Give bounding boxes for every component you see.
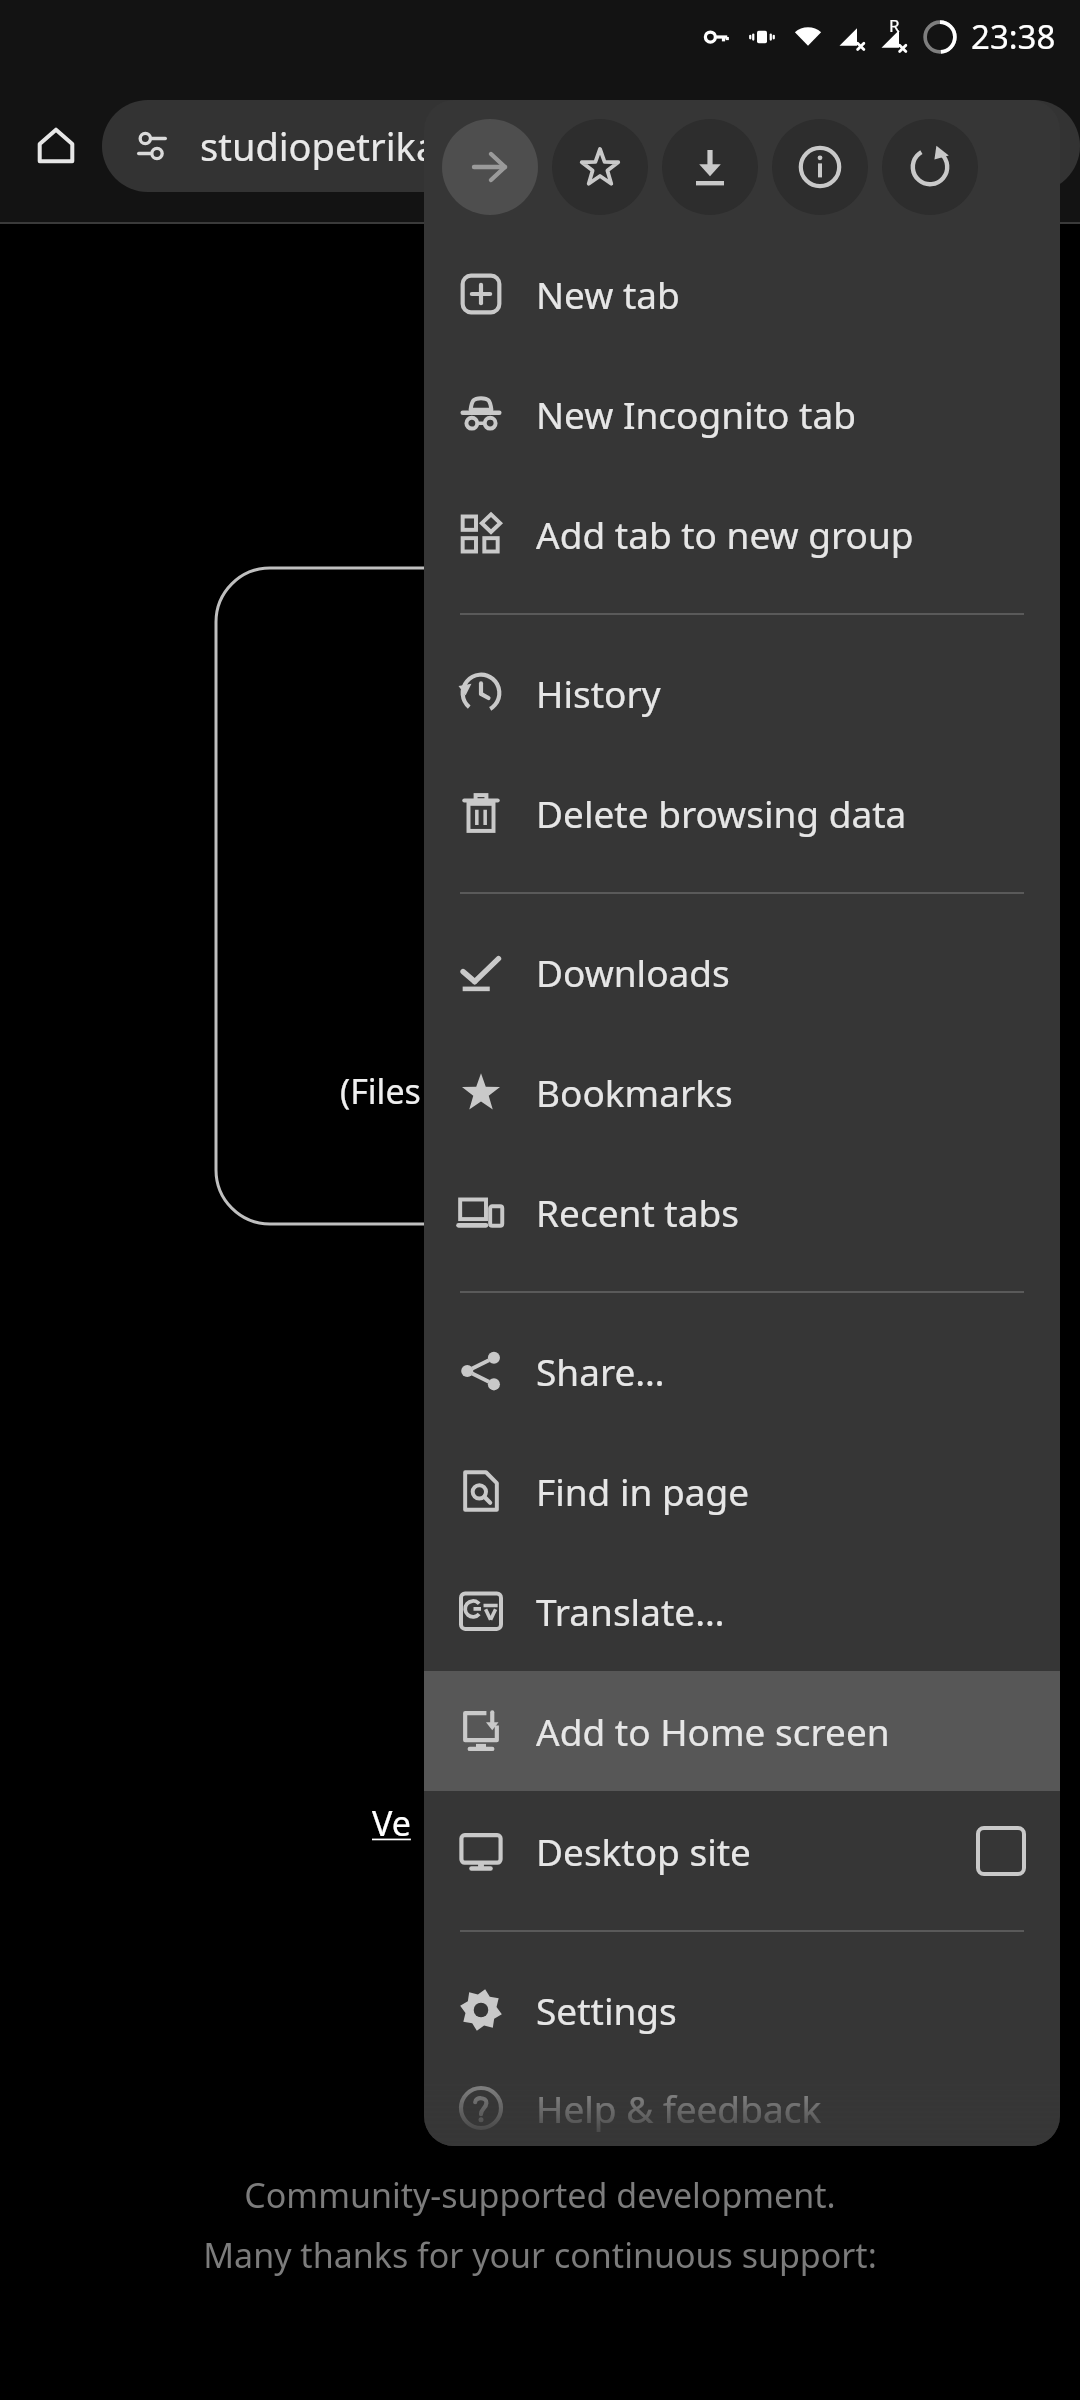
staticText: Help & feedback	[536, 2083, 822, 2133]
staticText: 23:38	[971, 14, 1056, 59]
staticText: Recent tabs	[536, 1187, 739, 1237]
button[interactable]: Add to Home screen	[424, 1671, 1060, 1791]
staticText: New tab	[536, 269, 680, 319]
staticText: Desktop site	[536, 1826, 751, 1876]
button[interactable]: New Incognito tab	[424, 354, 1060, 474]
button[interactable]: Help & feedback	[424, 2070, 1060, 2146]
staticText: R	[889, 14, 900, 37]
button[interactable]: Share…	[424, 1311, 1060, 1431]
button[interactable]: Settings	[424, 1950, 1060, 2070]
staticText: Bookmarks	[536, 1067, 733, 1117]
staticText: Community-supported development.	[244, 2172, 836, 2218]
button[interactable]: Downloads	[424, 912, 1060, 1032]
staticText: Settings	[536, 1985, 677, 2035]
staticText: Find in page	[536, 1466, 750, 1516]
button[interactable]: Bookmarks	[424, 1032, 1060, 1152]
button[interactable]: studiopetrikainulainen.com	[102, 100, 1080, 192]
button[interactable]: Reload	[882, 119, 978, 215]
staticText: History	[536, 668, 661, 718]
staticText: Translate…	[536, 1586, 725, 1636]
staticText: Many thanks for your continuous support:	[203, 2232, 877, 2278]
button[interactable]: Home	[18, 108, 94, 184]
staticText: Add tab to new group	[536, 509, 914, 559]
button[interactable]: Forward	[442, 119, 538, 215]
staticText: Downloads	[536, 947, 730, 997]
button[interactable]: Page info	[772, 119, 868, 215]
staticText: Add to Home screen	[536, 1706, 890, 1756]
button[interactable]: Delete browsing data	[424, 753, 1060, 873]
button[interactable]: New tab	[424, 234, 1060, 354]
button[interactable]: Add tab to new group	[424, 474, 1060, 594]
staticText: studiopetrikainulainen.com	[200, 120, 691, 172]
button[interactable]: Translate…	[424, 1551, 1060, 1671]
staticText: (Files	[340, 1068, 421, 1114]
staticText: Delete browsing data	[536, 788, 907, 838]
staticText: New Incognito tab	[536, 389, 856, 439]
button[interactable]: Desktop site	[424, 1791, 1060, 1911]
button[interactable]: Find in page	[424, 1431, 1060, 1551]
button[interactable]: Download page	[662, 119, 758, 215]
button[interactable]: Bookmark this page	[552, 119, 648, 215]
staticText: Share…	[536, 1346, 665, 1396]
button[interactable]: Recent tabs	[424, 1152, 1060, 1272]
button[interactable]: History	[424, 633, 1060, 753]
staticText: Ve	[372, 1800, 411, 1846]
